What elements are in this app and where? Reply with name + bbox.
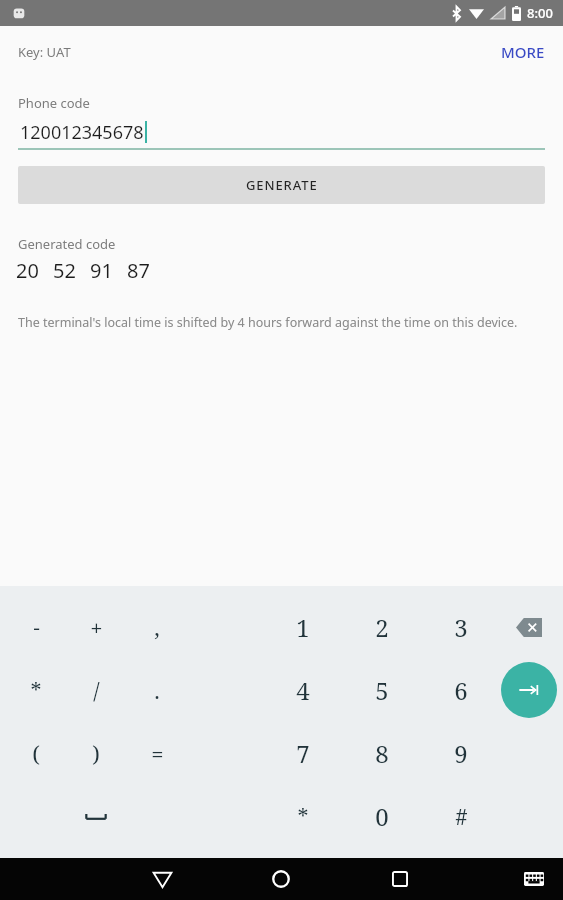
button[interactable]: * bbox=[269, 786, 337, 846]
button[interactable]: Home bbox=[253, 858, 309, 900]
staticText: 2 bbox=[375, 611, 389, 644]
button[interactable]: Space bbox=[62, 786, 130, 846]
staticText: Key: UAT bbox=[18, 43, 71, 61]
button[interactable]: - bbox=[2, 597, 70, 657]
staticText: 87 bbox=[127, 257, 150, 284]
button[interactable]: , bbox=[123, 597, 191, 657]
button[interactable]: 6 bbox=[427, 660, 495, 720]
button[interactable]: # bbox=[427, 786, 495, 846]
button[interactable]: ) bbox=[62, 723, 130, 783]
staticText: / bbox=[93, 675, 100, 705]
staticText: 5 bbox=[375, 674, 389, 707]
button[interactable]: 0 bbox=[348, 786, 416, 846]
staticText: 120012345678 bbox=[20, 120, 144, 144]
button[interactable]: / bbox=[62, 660, 130, 720]
button[interactable]: Back bbox=[134, 858, 190, 900]
staticText: 7 bbox=[296, 737, 310, 770]
staticText: 8 bbox=[375, 737, 389, 770]
button[interactable]: Recent apps bbox=[372, 858, 428, 900]
staticText: ( bbox=[32, 738, 40, 768]
staticText: Generated code bbox=[18, 235, 116, 253]
staticText: 91 bbox=[90, 257, 113, 284]
button[interactable]: ( bbox=[2, 723, 70, 783]
staticText: 8:00 bbox=[527, 4, 553, 22]
staticText: GENERATE bbox=[246, 176, 318, 194]
button[interactable]: 9 bbox=[427, 723, 495, 783]
staticText: 1 bbox=[296, 611, 310, 644]
staticText: , bbox=[154, 612, 160, 642]
button[interactable]: 8 bbox=[348, 723, 416, 783]
button[interactable]: Enter bbox=[501, 662, 557, 718]
button[interactable]: GENERATE bbox=[18, 166, 545, 204]
button[interactable]: * bbox=[2, 660, 70, 720]
staticText: 3 bbox=[454, 611, 468, 644]
button[interactable]: = bbox=[123, 723, 191, 783]
staticText: * bbox=[297, 801, 309, 831]
staticText: 4 bbox=[296, 674, 310, 707]
staticText: ) bbox=[92, 738, 100, 768]
staticText: # bbox=[455, 801, 468, 831]
staticText: 9 bbox=[454, 737, 468, 770]
staticText: MORE bbox=[501, 42, 545, 62]
staticText: The terminal's local time is shifted by … bbox=[18, 314, 518, 331]
staticText: - bbox=[33, 614, 40, 641]
button[interactable]: + bbox=[62, 597, 130, 657]
button[interactable]: Backspace bbox=[497, 599, 561, 655]
staticText: 0 bbox=[375, 800, 389, 833]
staticText: 6 bbox=[454, 674, 468, 707]
staticText: + bbox=[90, 612, 103, 642]
button[interactable]: 120012345678 bbox=[0, 120, 563, 144]
staticText: . bbox=[154, 675, 160, 705]
button[interactable]: . bbox=[123, 660, 191, 720]
staticText: = bbox=[151, 738, 164, 768]
staticText: 52 bbox=[53, 257, 76, 284]
button[interactable]: Switch keyboard bbox=[519, 864, 549, 894]
button[interactable]: 1 bbox=[269, 597, 337, 657]
staticText: * bbox=[30, 675, 42, 705]
button[interactable]: MORE bbox=[483, 34, 563, 70]
staticText: 20 bbox=[16, 257, 39, 284]
button[interactable]: 3 bbox=[427, 597, 495, 657]
button[interactable]: 5 bbox=[348, 660, 416, 720]
button[interactable]: 2 bbox=[348, 597, 416, 657]
button[interactable]: 4 bbox=[269, 660, 337, 720]
staticText: Phone code bbox=[18, 94, 90, 112]
button[interactable]: 7 bbox=[269, 723, 337, 783]
